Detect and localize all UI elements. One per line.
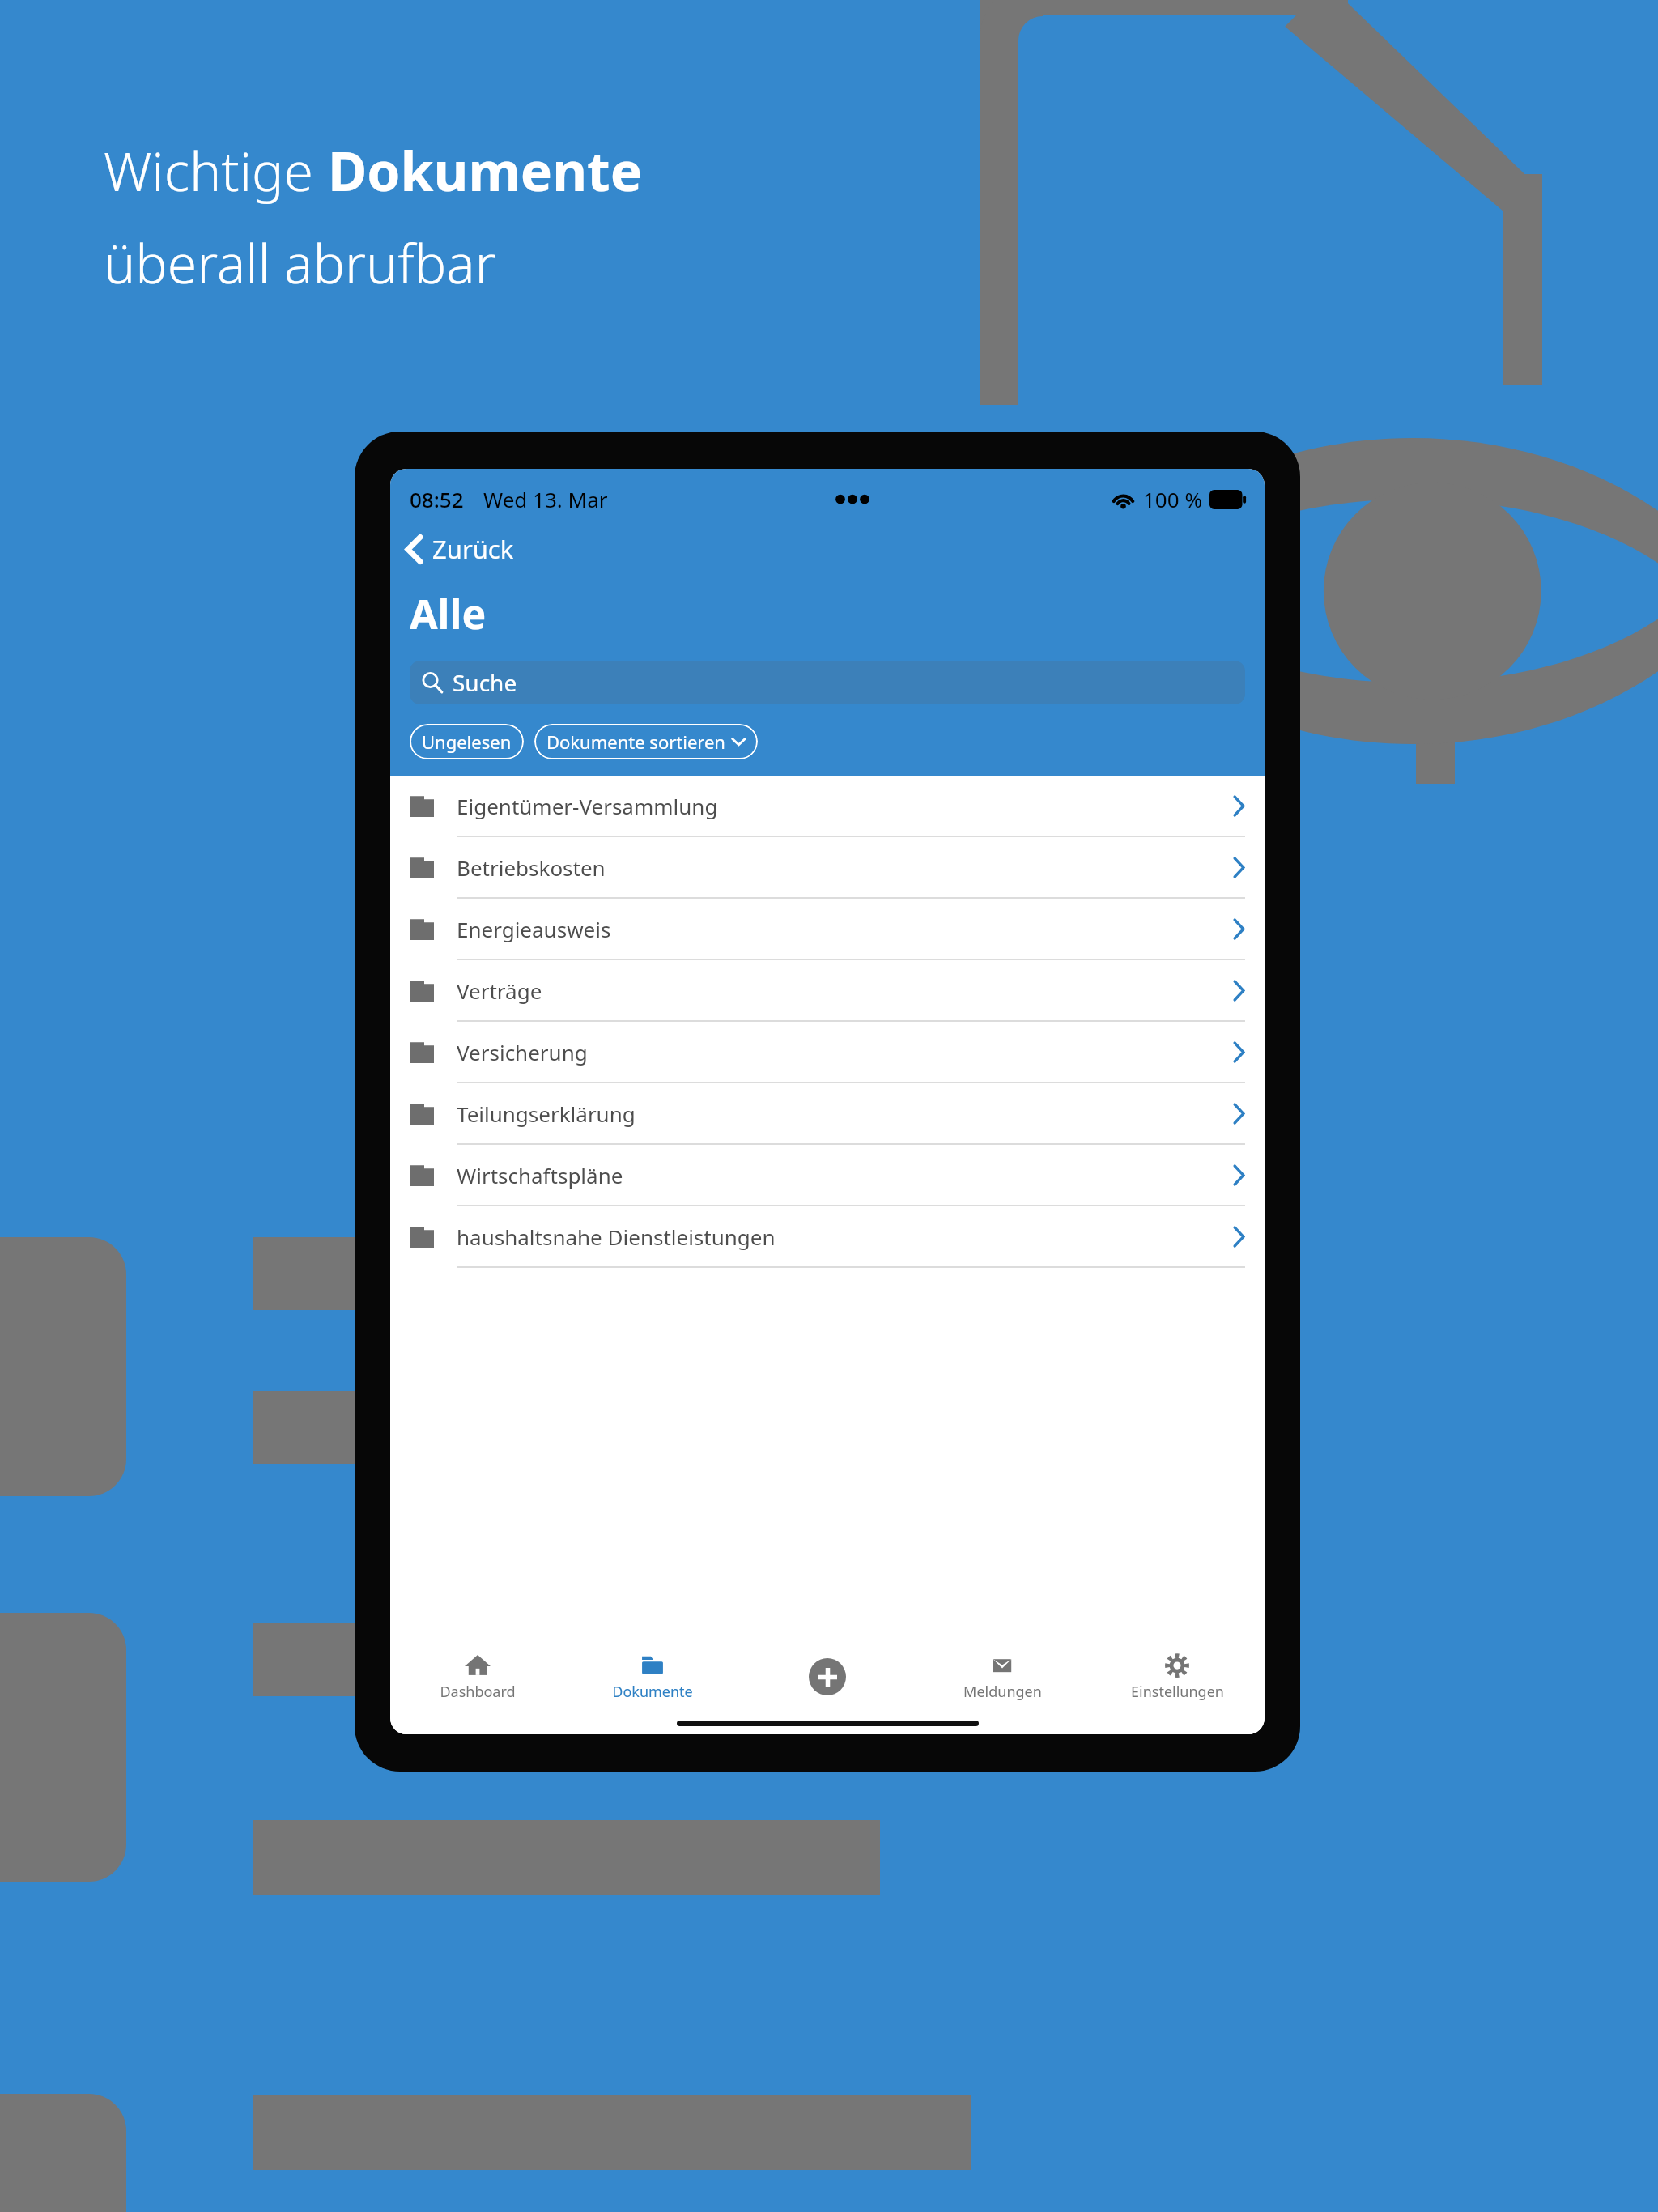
staticText: Dokumente: [612, 1682, 693, 1702]
button[interactable]: Zurück: [390, 528, 529, 570]
staticText: Ungelesen: [422, 730, 512, 754]
staticText: Suche: [453, 667, 517, 698]
button[interactable]: Teilungserklärung: [390, 1083, 1265, 1145]
button[interactable]: Betriebskosten: [390, 837, 1265, 899]
staticText: 08:52: [410, 485, 464, 513]
button[interactable]: Ungelesen: [410, 724, 524, 759]
button[interactable]: Verträge: [390, 960, 1265, 1022]
staticText: Energieausweis: [457, 915, 611, 943]
staticText: Einstellungen: [1131, 1682, 1224, 1702]
staticText: Eigentümer-Versammlung: [457, 792, 718, 820]
staticText: Betriebskosten: [457, 853, 606, 882]
button[interactable]: Dashboard: [390, 1653, 565, 1702]
staticText: Wichtige: [104, 134, 328, 206]
staticText: Dokumente sortieren: [546, 730, 725, 754]
staticText: Alle: [410, 586, 487, 641]
staticText: Wed 13. Mar: [483, 485, 608, 513]
button[interactable]: Energieausweis: [390, 899, 1265, 960]
staticText: Dashboard: [440, 1682, 516, 1702]
button[interactable]: Einstellungen: [1090, 1653, 1265, 1702]
staticText: überall abrufbar: [104, 226, 496, 299]
staticText: Wirtschaftspläne: [457, 1161, 623, 1189]
staticText: Verträge: [457, 976, 542, 1005]
button[interactable]: Neues Dokument hinzufügen: [740, 1658, 915, 1695]
staticText: Versicherung: [457, 1038, 588, 1066]
staticText: Dokumente: [328, 134, 643, 206]
staticText: haushaltsnahe Dienstleistungen: [457, 1223, 776, 1251]
button[interactable]: Dokumente sortieren: [534, 724, 758, 759]
staticText: Zurück: [432, 532, 514, 566]
button[interactable]: haushaltsnahe Dienstleistungen: [390, 1206, 1265, 1268]
button[interactable]: Eigentümer-Versammlung: [390, 776, 1265, 837]
staticText: 100 %: [1143, 485, 1202, 513]
button[interactable]: Versicherung: [390, 1022, 1265, 1083]
button[interactable]: Suche: [410, 661, 1245, 704]
staticText: Meldungen: [963, 1682, 1042, 1702]
staticText: Teilungserklärung: [457, 1100, 636, 1128]
button[interactable]: Dokumente: [565, 1653, 740, 1702]
button[interactable]: Meldungen: [915, 1653, 1090, 1702]
button[interactable]: Wirtschaftspläne: [390, 1145, 1265, 1206]
